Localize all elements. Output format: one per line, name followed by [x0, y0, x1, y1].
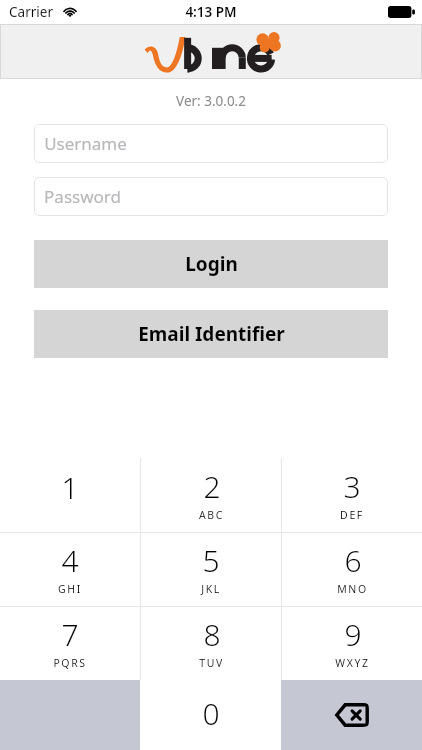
staticText: PQRS [53, 656, 87, 670]
staticText: 2 [203, 466, 221, 507]
staticText: TUV [199, 656, 224, 670]
staticText: Carrier [9, 3, 53, 21]
staticText: 4 [61, 540, 79, 581]
button[interactable]: 6 [282, 532, 422, 606]
button[interactable]: Username [34, 124, 388, 163]
button[interactable]: 1 [0, 458, 140, 532]
staticText: 0 [202, 693, 220, 734]
button[interactable]: 9 [282, 606, 422, 680]
staticText: Email Identifier [138, 321, 285, 347]
staticText: 3 [343, 466, 361, 507]
button[interactable]: 8 [141, 606, 281, 680]
button[interactable]: Backspace [281, 680, 422, 750]
button[interactable]: 4 [0, 532, 140, 606]
staticText: ABC [199, 508, 224, 522]
button[interactable]: Password [34, 177, 388, 216]
button[interactable]: 7 [0, 606, 140, 680]
staticText: 1 [61, 467, 79, 508]
staticText: 5 [202, 540, 220, 581]
staticText: Login [185, 251, 238, 277]
staticText: 4:13 PM [185, 3, 237, 21]
staticText: GHI [58, 582, 82, 596]
staticText: Ver: 3.0.0.2 [176, 92, 246, 110]
staticText: DEF [340, 508, 364, 522]
staticText: 7 [61, 614, 79, 655]
button[interactable]: 0 [140, 680, 281, 750]
staticText: Username [44, 132, 127, 155]
button[interactable]: Login [34, 240, 388, 288]
button[interactable]: 5 [141, 532, 281, 606]
staticText: WXYZ [335, 656, 370, 670]
staticText: MNO [337, 582, 368, 596]
staticText: 8 [203, 614, 221, 655]
button[interactable]: Email Identifier [34, 310, 388, 358]
staticText: JKL [201, 582, 221, 596]
staticText: 6 [344, 540, 362, 581]
staticText: 9 [344, 614, 362, 655]
button[interactable]: 3 [282, 458, 422, 532]
staticText: Password [44, 185, 121, 208]
button[interactable]: 2 [141, 458, 281, 532]
